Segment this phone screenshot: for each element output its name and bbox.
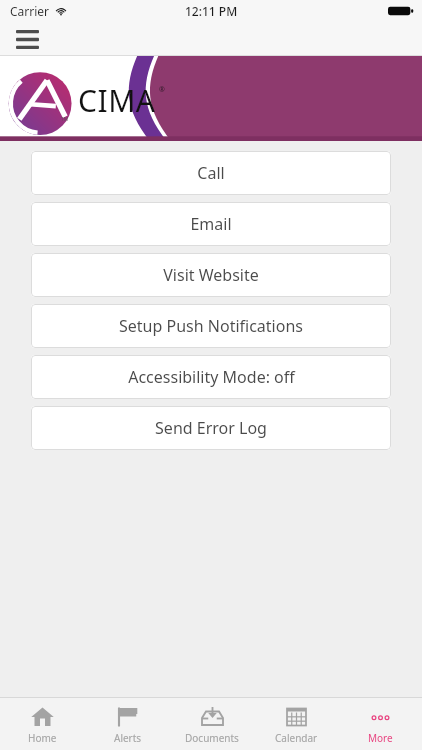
button[interactable]: Setup Push Notifications <box>31 304 391 348</box>
button[interactable]: Calendar <box>254 698 338 750</box>
staticText: ® <box>159 85 165 95</box>
button[interactable]: Send Error Log <box>31 406 391 450</box>
button[interactable]: Documents <box>170 698 254 750</box>
button[interactable]: More <box>338 698 422 750</box>
staticText: Documents <box>185 731 239 745</box>
button[interactable]: Home <box>0 698 85 750</box>
button[interactable]: Visit Website <box>31 253 391 297</box>
button[interactable]: Accessibility Mode: off <box>31 355 391 399</box>
staticText: Carrier <box>10 3 50 19</box>
button[interactable]: Email <box>31 202 391 246</box>
button[interactable]: Menu <box>8 22 46 56</box>
staticText: More <box>368 731 393 745</box>
button[interactable]: Call <box>31 151 391 195</box>
button[interactable]: Alerts <box>85 698 170 750</box>
staticText: Setup Push Notifications <box>119 315 303 337</box>
staticText: Alerts <box>114 731 142 745</box>
staticText: Calendar <box>275 731 318 745</box>
staticText: Send Error Log <box>155 417 267 439</box>
staticText: Email <box>190 213 232 235</box>
staticText: Home <box>28 731 57 745</box>
staticText: Visit Website <box>163 264 259 286</box>
staticText: Call <box>197 162 225 184</box>
staticText: 12:11 PM <box>185 3 238 19</box>
staticText: CIMA <box>78 80 156 121</box>
staticText: Accessibility Mode: off <box>128 366 295 388</box>
staticText: TM <box>61 116 69 123</box>
